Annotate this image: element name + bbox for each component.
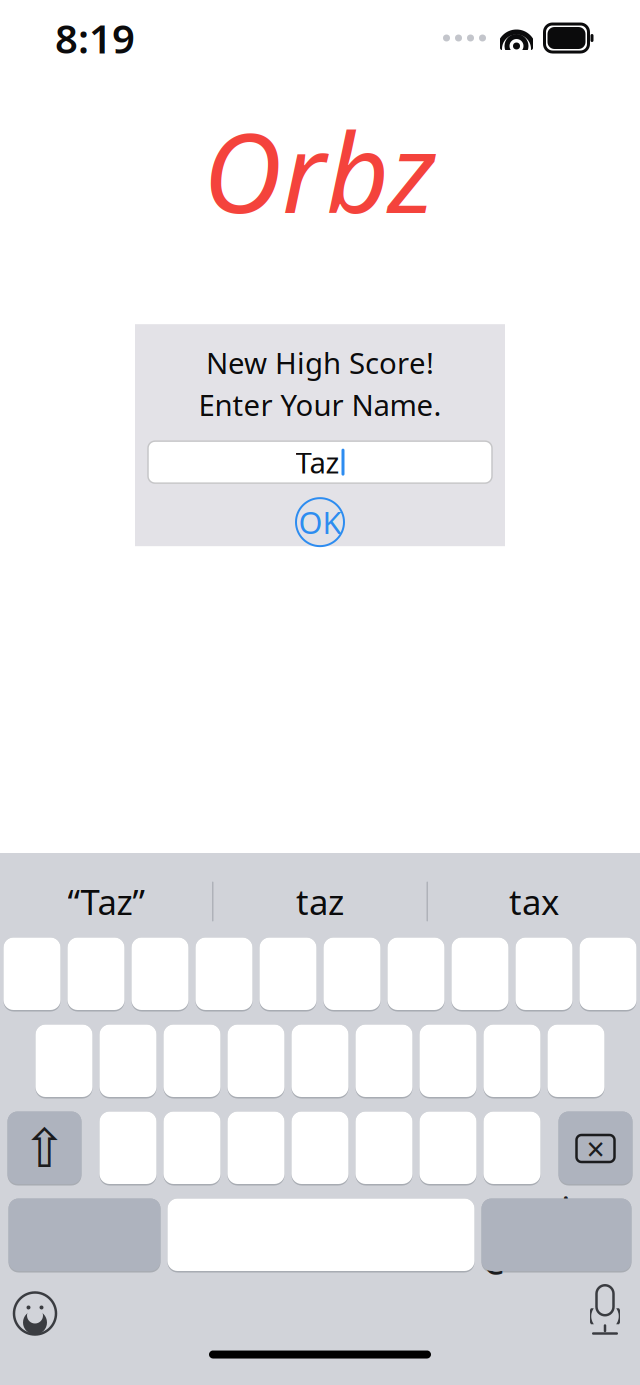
button[interactable]: o [515, 937, 572, 1011]
staticText: New High Score! [206, 343, 434, 382]
button[interactable]: OK [296, 498, 344, 546]
button[interactable]: Dictation [570, 1278, 640, 1348]
button[interactable]: b [355, 1111, 412, 1185]
button[interactable]: g [291, 1024, 348, 1098]
button[interactable]: j [419, 1024, 476, 1098]
staticText: tax [509, 878, 559, 924]
button[interactable]: l [547, 1024, 604, 1098]
button[interactable]: space [167, 1198, 474, 1272]
button[interactable]: r [195, 937, 252, 1011]
button[interactable]: tax [428, 871, 640, 931]
button[interactable]: w [67, 937, 124, 1011]
staticText: Enter Your Name. [198, 385, 441, 424]
button[interactable]: a [35, 1024, 92, 1098]
button[interactable]: taz [213, 871, 426, 931]
button[interactable]: q [3, 937, 60, 1011]
button[interactable]: s [99, 1024, 156, 1098]
button[interactable]: “Taz” [0, 871, 212, 931]
button[interactable]: v [291, 1111, 348, 1185]
staticText: “Taz” [67, 878, 144, 924]
button[interactable]: c [227, 1111, 284, 1185]
staticText: Taz [295, 443, 339, 482]
staticText: 8:19 [55, 11, 135, 64]
staticText: OK [298, 502, 341, 542]
button[interactable]: continue [481, 1198, 631, 1272]
button[interactable]: 123 [8, 1198, 160, 1272]
staticText: continue [484, 1186, 629, 1285]
staticText: × [586, 1127, 604, 1170]
button[interactable]: m [483, 1111, 540, 1185]
button[interactable]: z [99, 1111, 156, 1185]
button[interactable]: d [163, 1024, 220, 1098]
button[interactable]: t [259, 937, 316, 1011]
button[interactable]: u [387, 937, 444, 1011]
button[interactable]: e [131, 937, 188, 1011]
button[interactable]: Shift [7, 1111, 81, 1185]
button[interactable]: Emoji [0, 1278, 70, 1348]
button[interactable]: y [323, 937, 380, 1011]
button[interactable]: h [355, 1024, 412, 1098]
button[interactable]: p [579, 937, 636, 1011]
button[interactable]: f [227, 1024, 284, 1098]
staticText: taz [296, 878, 344, 924]
button[interactable]: n [419, 1111, 476, 1185]
button[interactable]: k [483, 1024, 540, 1098]
button[interactable]: Delete [558, 1111, 632, 1185]
button[interactable]: i [451, 937, 508, 1011]
staticText: Orbz [203, 98, 437, 243]
staticText: ⇧ [22, 1118, 67, 1179]
button[interactable]: x [163, 1111, 220, 1185]
